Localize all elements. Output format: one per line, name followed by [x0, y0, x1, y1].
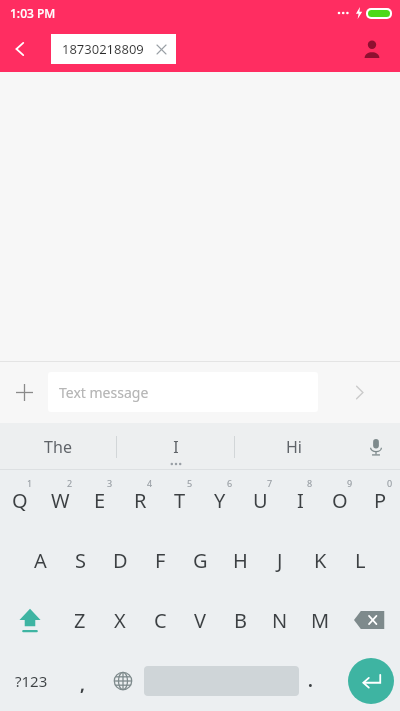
button[interactable]: N — [260, 590, 300, 650]
button[interactable]: A — [20, 530, 60, 590]
staticText: 7 — [267, 477, 273, 489]
button[interactable]: G — [180, 530, 220, 590]
button[interactable]: P — [360, 470, 400, 530]
staticText: B — [234, 607, 247, 634]
button[interactable]: ?123 — [0, 650, 62, 711]
button[interactable]: 18730218809 — [51, 34, 176, 64]
staticText: 1 — [27, 477, 33, 489]
staticText: F — [155, 547, 166, 574]
staticText: Y — [214, 487, 226, 514]
button[interactable]: Back — [0, 29, 40, 69]
staticText: 6 — [227, 477, 233, 489]
staticText: 5 — [187, 477, 193, 489]
staticText: E — [94, 487, 106, 514]
button[interactable]: O — [320, 470, 360, 530]
button[interactable]: U — [240, 470, 280, 530]
button[interactable]: V — [180, 590, 220, 650]
staticText: U — [253, 487, 268, 514]
staticText: L — [355, 547, 366, 574]
staticText: O — [332, 487, 348, 514]
button[interactable]: , — [62, 650, 102, 711]
button[interactable]: Shift — [0, 590, 60, 650]
button[interactable]: Backspace — [340, 590, 400, 650]
staticText: S — [75, 547, 86, 574]
staticText: The — [44, 436, 72, 458]
staticText: N — [272, 607, 288, 634]
button[interactable]: Contacts — [352, 29, 392, 69]
staticText: R — [134, 487, 147, 514]
button[interactable]: J — [260, 530, 300, 590]
staticText: . — [308, 669, 313, 692]
button[interactable]: B — [220, 590, 260, 650]
staticText: 18730218809 — [62, 40, 144, 58]
staticText: , — [80, 673, 85, 696]
staticText: Q — [12, 487, 28, 514]
button[interactable]: Y — [200, 470, 240, 530]
button[interactable]: K — [300, 530, 340, 590]
staticText: 4 — [147, 477, 153, 489]
button[interactable]: C — [140, 590, 180, 650]
button[interactable]: S — [60, 530, 100, 590]
staticText: 1:03 PM — [10, 5, 56, 21]
staticText: A — [34, 547, 47, 574]
button[interactable]: Q — [0, 470, 40, 530]
button[interactable]: F — [140, 530, 180, 590]
button[interactable]: Voice input — [352, 423, 400, 470]
staticText: 9 — [347, 477, 353, 489]
staticText: J — [277, 547, 283, 574]
staticText: Hi — [286, 436, 302, 458]
button[interactable]: W — [40, 470, 80, 530]
button[interactable]: I — [280, 470, 320, 530]
staticText: G — [193, 547, 208, 574]
staticText: C — [154, 607, 167, 634]
staticText: 2 — [67, 477, 73, 489]
button[interactable]: Attach — [0, 368, 48, 416]
button[interactable]: Hi — [235, 423, 352, 470]
staticText: I — [297, 487, 304, 514]
button[interactable]: Send — [318, 368, 400, 416]
staticText: H — [233, 547, 248, 574]
button[interactable]: Change language — [102, 650, 144, 711]
staticText: P — [374, 487, 387, 514]
button[interactable]: H — [220, 530, 260, 590]
button[interactable]: Enter — [348, 658, 394, 704]
button[interactable]: E — [80, 470, 120, 530]
button[interactable]: X — [100, 590, 140, 650]
button[interactable]: Clear — [150, 38, 172, 60]
button[interactable]: T — [160, 470, 200, 530]
button[interactable]: Z — [60, 590, 100, 650]
button[interactable]: Text message — [48, 372, 318, 412]
staticText: 8 — [307, 477, 313, 489]
button[interactable]: . — [299, 650, 342, 711]
staticText: X — [114, 607, 126, 634]
staticText: 3 — [107, 477, 113, 489]
button[interactable]: R — [120, 470, 160, 530]
button[interactable]: L — [340, 530, 380, 590]
staticText: Text message — [59, 383, 149, 402]
staticText: V — [194, 607, 206, 634]
staticText: M — [311, 607, 330, 634]
button[interactable]: D — [100, 530, 140, 590]
staticText: ?123 — [15, 671, 48, 691]
button[interactable]: The — [0, 423, 116, 470]
staticText: 0 — [387, 477, 393, 489]
staticText: T — [174, 487, 186, 514]
button[interactable]: I — [117, 423, 234, 470]
staticText: K — [314, 547, 327, 574]
staticText: I — [173, 436, 179, 458]
button[interactable]: M — [300, 590, 340, 650]
staticText: W — [51, 487, 70, 514]
staticText: D — [113, 547, 128, 574]
staticText: Z — [74, 607, 86, 634]
